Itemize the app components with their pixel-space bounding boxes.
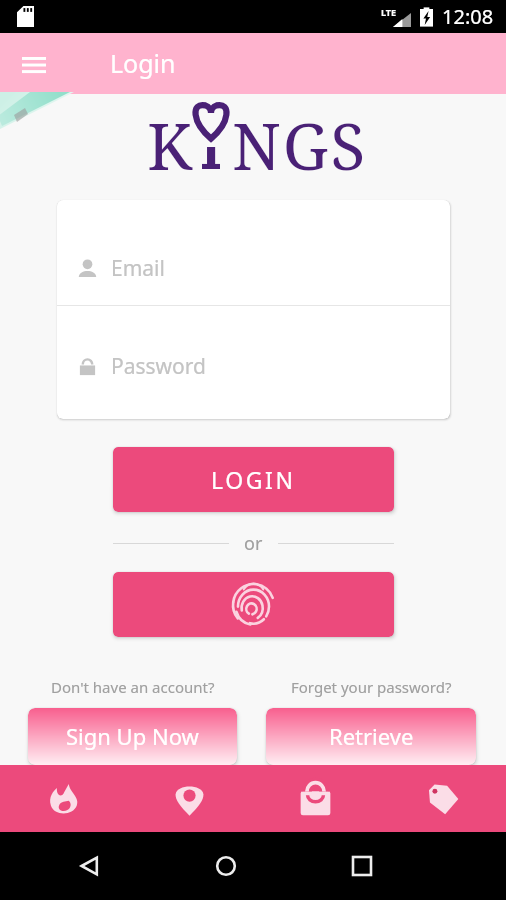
button[interactable]: Trending bbox=[0, 765, 126, 832]
staticText: Retrieve bbox=[329, 721, 414, 751]
staticText: 12:08 bbox=[442, 3, 494, 30]
button[interactable]: Offers bbox=[379, 765, 506, 832]
button[interactable]: Nearby bbox=[126, 765, 252, 832]
staticText: Sign Up Now bbox=[66, 721, 199, 751]
button[interactable]: Sign in with fingerprint bbox=[113, 572, 394, 637]
button[interactable]: Menu bbox=[7, 37, 61, 91]
staticText: NGS bbox=[232, 102, 368, 180]
button[interactable]: Sign Up Now bbox=[28, 708, 237, 765]
button[interactable]: Retrieve bbox=[266, 708, 476, 765]
staticText: Forget your password? bbox=[291, 677, 452, 697]
button[interactable]: Password bbox=[57, 306, 450, 419]
staticText: Password bbox=[111, 352, 206, 381]
button[interactable]: Home bbox=[199, 839, 253, 893]
button[interactable]: LOGIN bbox=[113, 447, 394, 512]
staticText: K bbox=[147, 102, 194, 180]
staticText: or bbox=[244, 531, 263, 556]
staticText: Login bbox=[110, 46, 176, 80]
staticText: Email bbox=[111, 254, 165, 283]
button[interactable]: Shop bbox=[252, 765, 379, 832]
button[interactable]: Recents bbox=[335, 839, 389, 893]
button[interactable]: Email bbox=[57, 200, 450, 305]
button[interactable]: Back bbox=[63, 839, 117, 893]
staticText: Don't have an account? bbox=[51, 677, 215, 697]
staticText: LOGIN bbox=[211, 464, 296, 495]
staticText: LTE bbox=[381, 6, 397, 18]
